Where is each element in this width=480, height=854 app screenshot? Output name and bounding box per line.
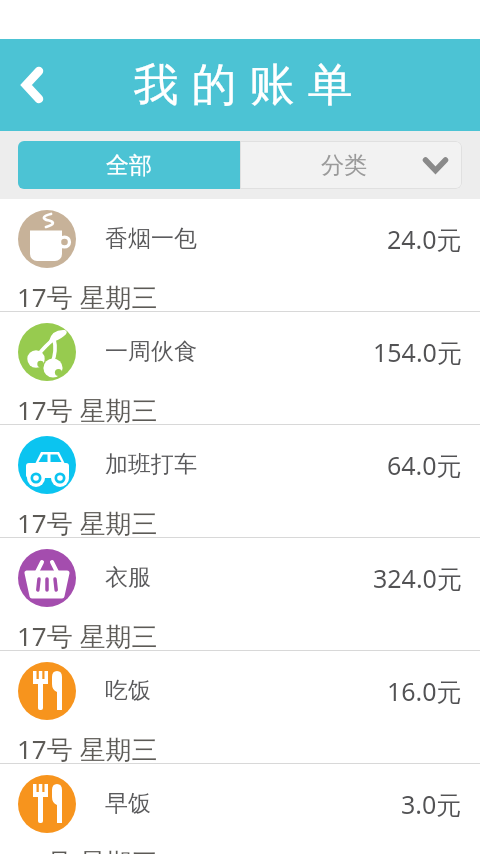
staticText: 17号 星期三 [17,279,158,312]
button[interactable]: 衣服 [0,538,480,617]
button[interactable]: 香烟一包 [0,199,480,278]
staticText: 全部 [106,151,152,180]
staticText: 我的账单 [127,57,359,114]
button[interactable] [8,61,56,109]
staticText: 64.0元 [387,448,462,482]
staticText: 3.0元 [401,787,462,821]
button[interactable]: 早饭 [0,764,480,843]
staticText: 17号 星期三 [17,731,158,764]
button[interactable]: 加班打车 [0,425,480,504]
button[interactable]: 吃饭 [0,651,480,730]
staticText: 一周伙食 [105,337,197,366]
staticText: 324.0元 [373,561,462,595]
button[interactable]: 分类 [240,141,462,189]
staticText: 17号 星期三 [17,392,158,425]
staticText: 16.0元 [387,674,462,708]
staticText: 衣服 [105,563,151,592]
staticText: 早饭 [105,789,151,818]
staticText: 17号 星期三 [17,844,158,854]
staticText: 17号 星期三 [17,618,158,651]
button[interactable]: 一周伙食 [0,312,480,391]
staticText: 香烟一包 [105,224,197,253]
button[interactable]: 全部 [18,141,240,189]
staticText: 17号 星期三 [17,505,158,538]
staticText: 154.0元 [373,335,462,369]
staticText: 分类 [321,151,367,180]
staticText: 24.0元 [387,222,462,256]
staticText: 吃饭 [105,676,151,705]
staticText: 加班打车 [105,450,197,479]
